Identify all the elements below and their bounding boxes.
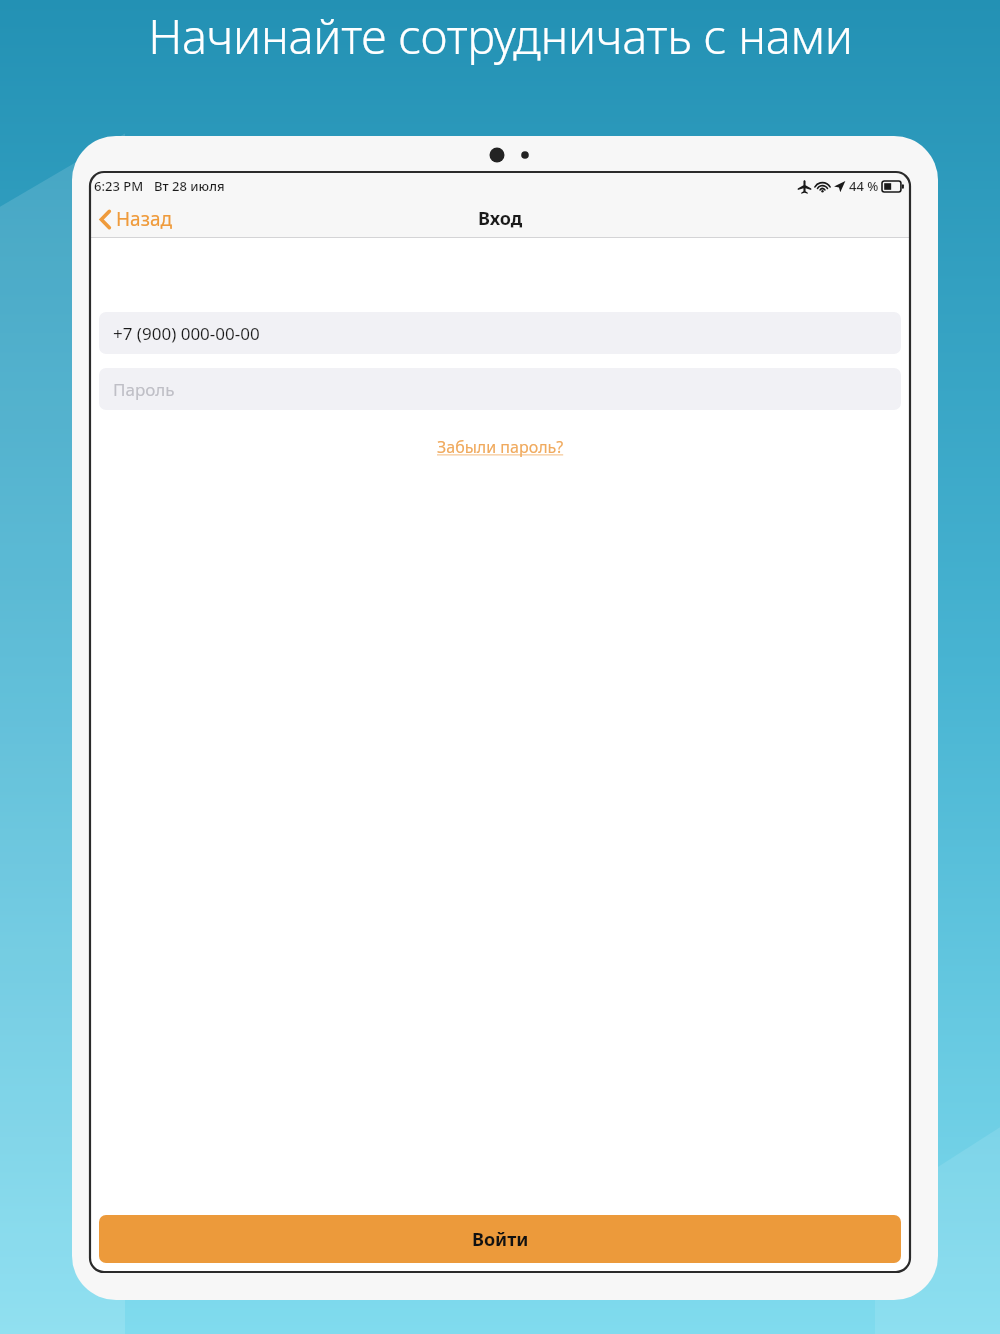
button[interactable]: Назад [90,202,185,236]
staticText: Вт 28 июля [154,177,225,195]
button[interactable]: Пароль [99,368,901,410]
staticText: Забыли пароль? [437,436,564,458]
button[interactable]: Забыли пароль? [429,432,572,462]
other: Battery 44 percent [882,181,904,192]
staticText: Вход [478,206,523,231]
staticText: 6:23 PM [94,177,144,195]
other: Airplane mode [797,179,812,194]
staticText: Войти [472,1227,529,1252]
staticText: 44 % [849,177,879,195]
button[interactable]: +7 (900) 000-00-00 [99,312,901,354]
staticText: Пароль [113,378,175,401]
staticText: Назад [116,206,173,232]
button[interactable]: Войти [99,1215,901,1263]
other: Location [833,180,846,193]
staticText: Начинайте сотрудничать с нами [148,4,853,68]
other: Wi-Fi [815,179,830,194]
staticText: +7 (900) 000-00-00 [113,322,260,345]
